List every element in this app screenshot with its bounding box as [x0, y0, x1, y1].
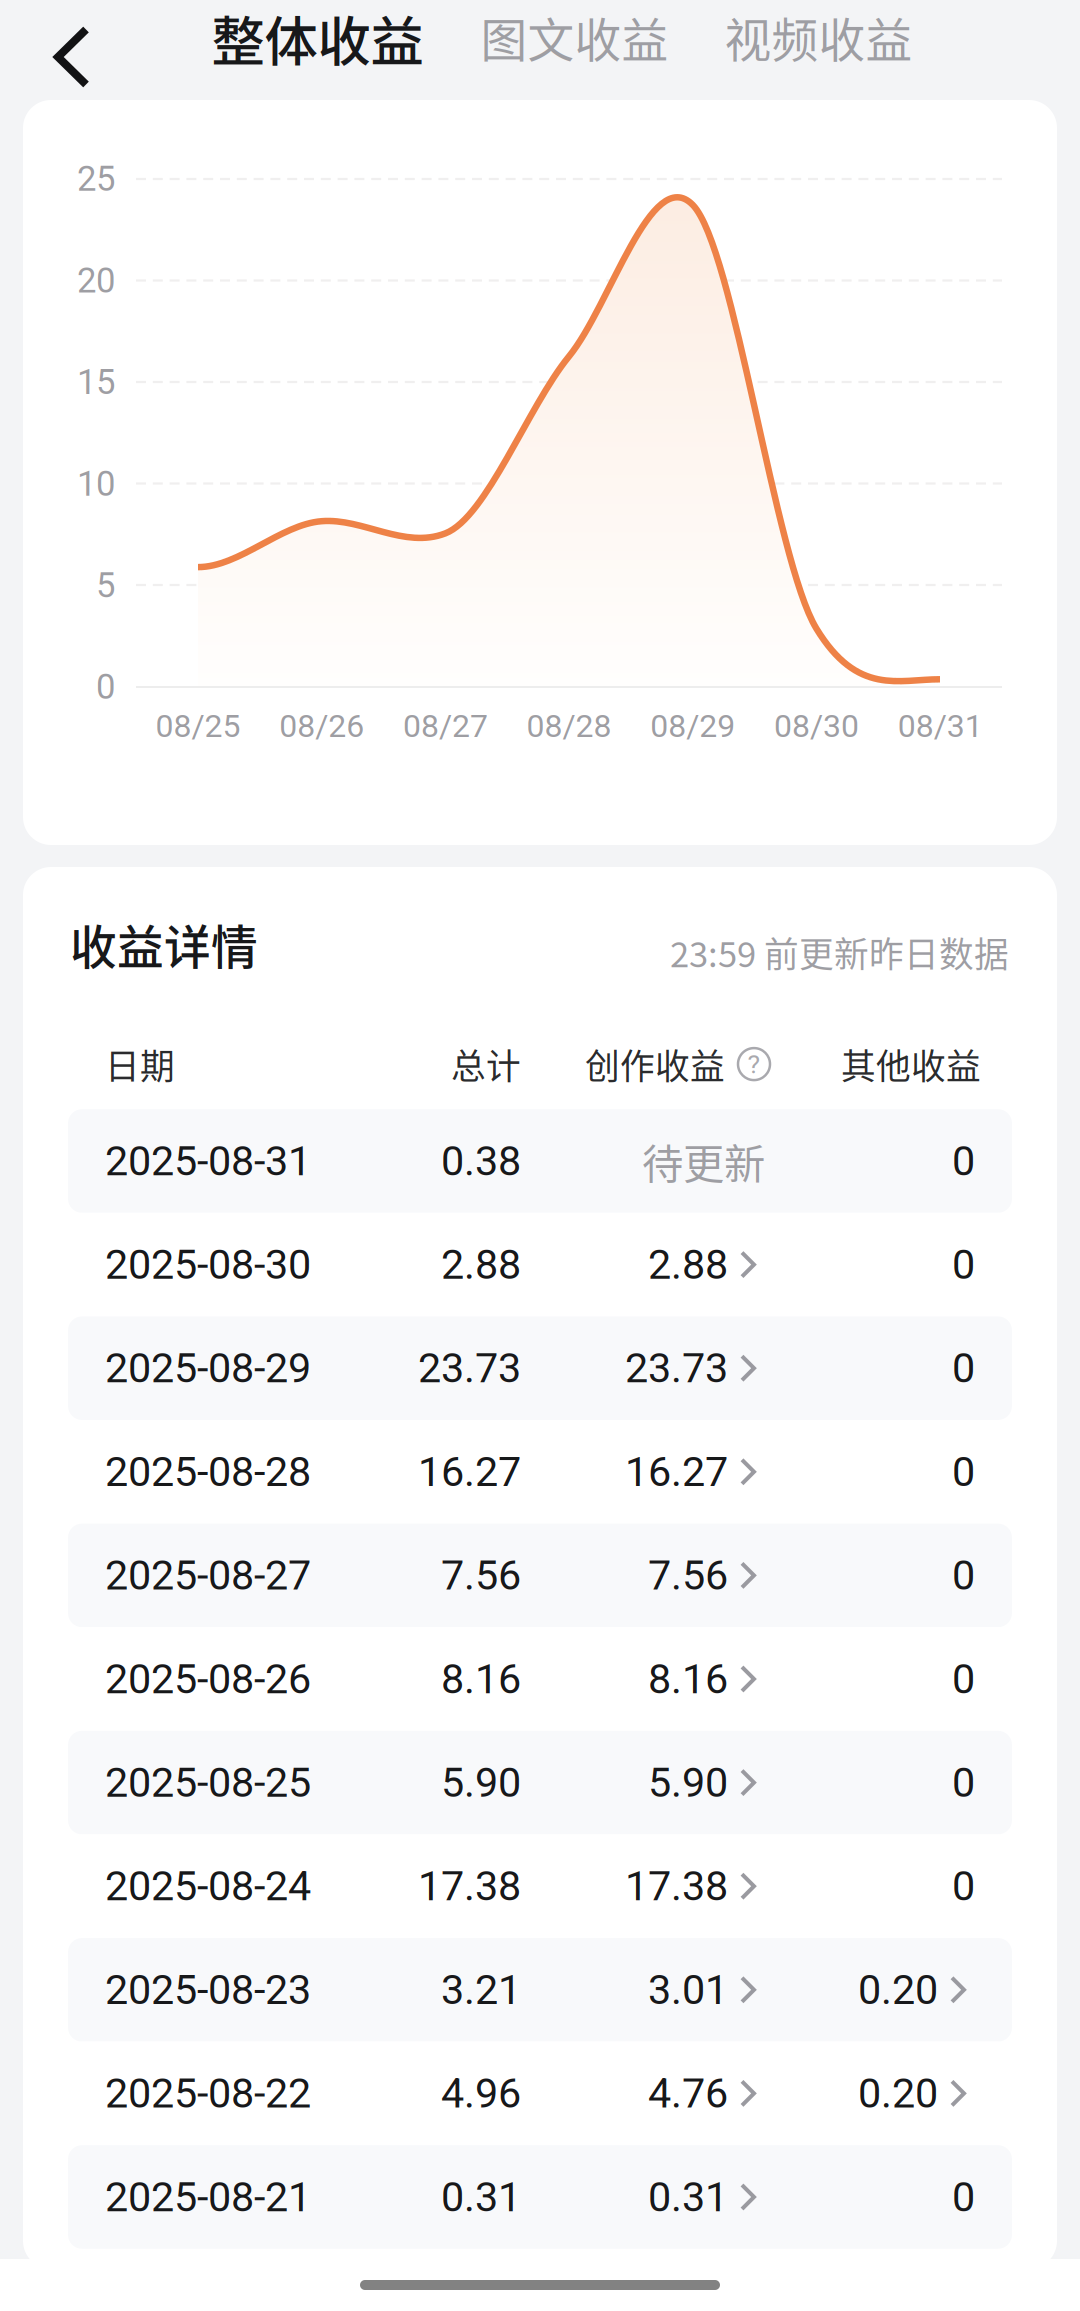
button[interactable]: 返回: [13, 9, 131, 105]
staticText: 10: [77, 463, 115, 504]
staticText: 0: [952, 1137, 975, 1185]
staticText: 0.38: [441, 1137, 521, 1185]
staticText: 2025-08-29: [105, 1344, 311, 1392]
staticText: 2025-08-28: [105, 1448, 311, 1496]
staticText: 17.38: [625, 1862, 728, 1910]
staticText: 2025-08-22: [105, 2069, 311, 2118]
staticText: 日期: [105, 1039, 175, 1089]
button[interactable]: 2025-08-31: [68, 1109, 1012, 1213]
staticText: 08/31: [898, 707, 983, 745]
button[interactable]: 2025-08-24: [68, 1834, 1012, 1938]
button[interactable]: 2025-08-22: [68, 2042, 1012, 2145]
staticText: 0: [952, 1240, 975, 1289]
button[interactable]: 视频收益: [713, 0, 924, 77]
staticText: 5.90: [441, 1758, 521, 1807]
staticText: 08/28: [527, 707, 612, 745]
button[interactable]: 2025-08-23: [68, 1938, 1012, 2042]
staticText: 2025-08-31: [105, 1137, 311, 1185]
staticText: 0: [952, 1862, 975, 1910]
staticText: 5: [96, 565, 115, 606]
staticText: 16.27: [418, 1448, 521, 1496]
staticText: 0.20: [858, 2069, 938, 2118]
staticText: 2025-08-21: [105, 2173, 311, 2221]
staticText: 收益详情: [70, 910, 258, 978]
staticText: 4.76: [648, 2069, 728, 2118]
staticText: 17.38: [418, 1862, 521, 1910]
staticText: 20: [77, 260, 115, 301]
button[interactable]: 2025-08-29: [68, 1316, 1012, 1420]
staticText: 2025-08-26: [105, 1655, 311, 1703]
staticText: 0: [952, 1344, 975, 1392]
staticText: 0: [952, 2173, 975, 2221]
staticText: 3.21: [441, 1966, 521, 2014]
button[interactable]: 2025-08-28: [68, 1420, 1012, 1524]
staticText: 08/26: [279, 707, 364, 745]
button[interactable]: 整体收益: [205, 0, 430, 78]
staticText: 7.56: [441, 1551, 521, 1600]
button[interactable]: 2025-08-30: [68, 1213, 1012, 1316]
staticText: 0: [952, 1655, 975, 1703]
staticText: 16.27: [625, 1448, 728, 1496]
staticText: 0: [952, 1551, 975, 1600]
staticText: 08/30: [774, 707, 859, 745]
staticText: 25: [77, 159, 115, 199]
staticText: 2025-08-23: [105, 1966, 311, 2014]
staticText: 2025-08-27: [105, 1551, 311, 1600]
staticText: 7.56: [648, 1551, 728, 1600]
staticText: 8.16: [648, 1655, 728, 1703]
staticText: 4.96: [441, 2069, 521, 2118]
staticText: 2.88: [441, 1240, 521, 1289]
button[interactable]: 2025-08-25: [68, 1731, 1012, 1834]
staticText: 23:59 前更新昨日数据: [670, 927, 1009, 977]
staticText: 0: [952, 1758, 975, 1807]
staticText: ?: [747, 1048, 760, 1080]
staticText: 0.31: [648, 2173, 728, 2221]
staticText: 23.73: [625, 1344, 728, 1392]
staticText: 总计: [451, 1039, 521, 1089]
staticText: 2025-08-30: [105, 1240, 311, 1289]
staticText: 5.90: [648, 1758, 728, 1807]
staticText: 8.16: [441, 1655, 521, 1703]
staticText: 图文收益: [480, 3, 668, 71]
button[interactable]: 2025-08-21: [68, 2145, 1012, 2249]
staticText: 待更新: [642, 1131, 765, 1191]
staticText: 0.31: [441, 2173, 521, 2221]
staticText: 3.01: [648, 1966, 728, 2014]
staticText: 0.20: [858, 1966, 938, 2014]
staticText: 2025-08-25: [105, 1758, 311, 1807]
staticText: 2.88: [648, 1240, 728, 1289]
staticText: 15: [77, 362, 115, 402]
staticText: 整体收益: [211, 0, 423, 77]
button[interactable]: 图文收益: [469, 0, 680, 77]
staticText: 0: [96, 667, 115, 707]
staticText: 其他收益: [841, 1039, 981, 1089]
staticText: 08/29: [650, 707, 735, 745]
staticText: 视频收益: [724, 3, 912, 71]
staticText: 创作收益: [585, 1039, 725, 1089]
staticText: 0: [952, 1448, 975, 1496]
staticText: 08/27: [403, 707, 488, 745]
staticText: 23.73: [418, 1344, 521, 1392]
staticText: 2025-08-24: [105, 1862, 311, 1910]
staticText: 08/25: [155, 707, 240, 745]
button[interactable]: 2025-08-26: [68, 1627, 1012, 1731]
button[interactable]: 2025-08-27: [68, 1524, 1012, 1627]
